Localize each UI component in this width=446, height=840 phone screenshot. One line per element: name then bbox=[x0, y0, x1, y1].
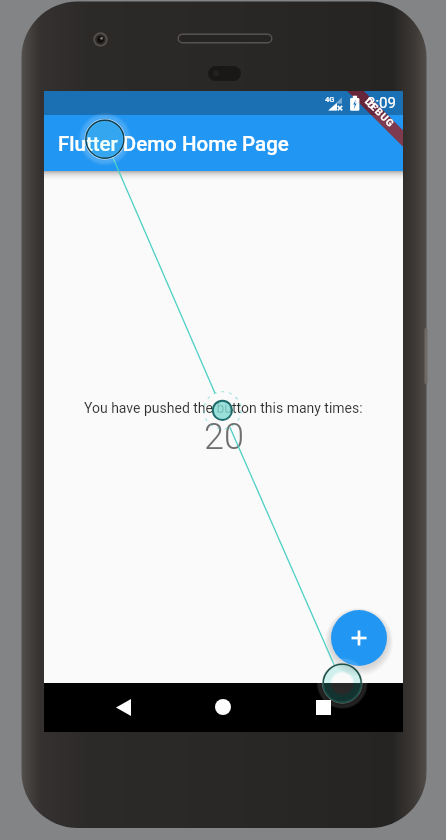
staticText: 20 bbox=[204, 416, 244, 458]
staticText: You have pushed the button this many tim… bbox=[84, 400, 363, 416]
button[interactable]: Back bbox=[99, 683, 147, 731]
staticText: 4G bbox=[325, 95, 335, 104]
button[interactable]: Home bbox=[199, 683, 247, 731]
button[interactable]: Recent apps bbox=[299, 683, 347, 731]
button[interactable]: Increment bbox=[331, 610, 387, 666]
staticText: Flutter Demo Home Page bbox=[58, 132, 289, 156]
staticText: 3:09 bbox=[367, 94, 396, 112]
staticText: DEBUG bbox=[362, 96, 397, 130]
